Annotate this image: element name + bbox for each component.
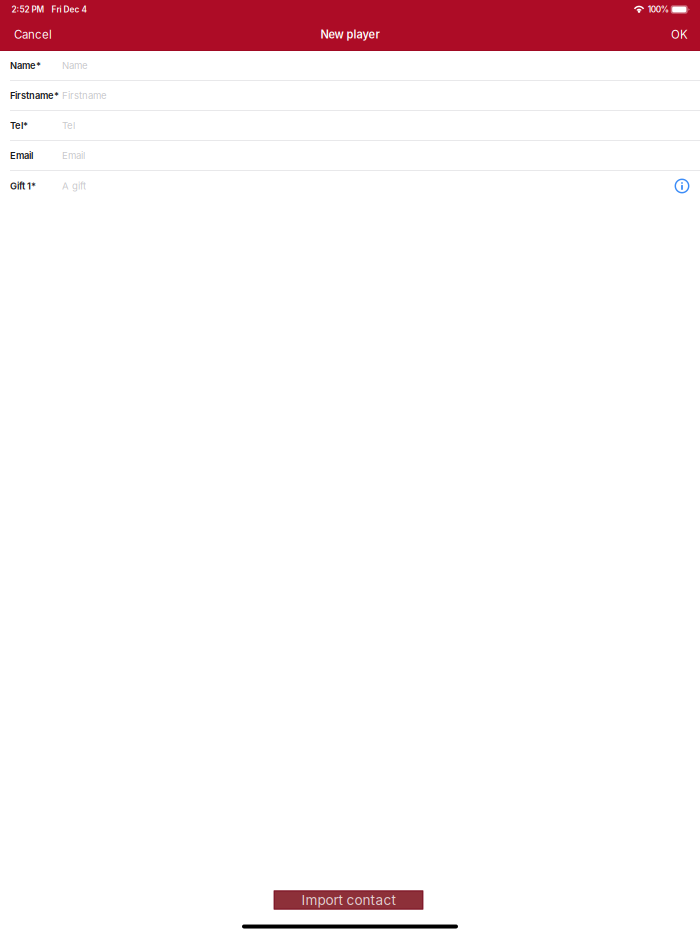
staticText: Gift 1*: [10, 180, 36, 192]
staticText: Cancel: [14, 28, 52, 41]
staticText: New player: [320, 28, 379, 41]
staticText: Email: [10, 150, 33, 161]
staticText: Import contact: [301, 892, 395, 908]
staticText: A gift: [62, 180, 86, 192]
staticText: Firstname: [62, 90, 107, 101]
staticText: Name: [62, 60, 88, 71]
button[interactable]: Cancel: [4, 24, 62, 45]
button[interactable]: Import contact: [274, 890, 423, 909]
staticText: OK: [671, 28, 688, 41]
staticText: Email: [62, 150, 85, 161]
staticText: Tel: [62, 120, 75, 131]
staticText: 100%: [648, 4, 669, 14]
staticText: Firstname*: [10, 90, 59, 101]
staticText: Tel*: [10, 120, 28, 131]
button[interactable]: Gift information: [670, 173, 694, 199]
button[interactable]: OK: [661, 24, 698, 45]
staticText: 2:52 PM: [11, 4, 44, 14]
staticText: Name*: [10, 60, 41, 71]
staticText: Fri Dec 4: [51, 4, 87, 14]
